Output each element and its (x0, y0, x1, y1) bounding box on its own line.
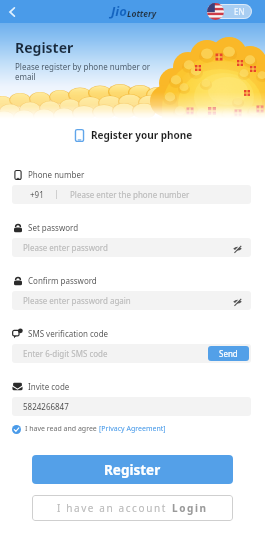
button[interactable]: I have read and agree (12, 424, 166, 434)
button[interactable]: Show password (231, 242, 243, 254)
staticText: +91 (30, 189, 44, 200)
staticText: Confirm password (28, 275, 97, 286)
staticText: [Privacy Agreement] (99, 424, 166, 434)
staticText: Send (219, 348, 238, 359)
staticText: Please enter the phone number (70, 189, 190, 200)
staticText: EN (234, 6, 245, 17)
button[interactable]: Back (2, 2, 22, 22)
staticText: I have an account (57, 501, 172, 515)
staticText: Set password (28, 222, 79, 233)
staticText: Jio (111, 2, 127, 20)
staticText: Register (15, 38, 74, 57)
staticText: Please enter password (23, 242, 108, 253)
staticText: Invite code (28, 381, 70, 392)
staticText: Please register by phone number or email (15, 61, 151, 83)
staticText: 5824266847 (23, 401, 69, 412)
staticText: Login (172, 501, 208, 515)
button[interactable]: Language English (207, 4, 252, 19)
staticText: Please enter password again (23, 295, 131, 306)
button[interactable]: Register (32, 455, 233, 484)
button[interactable]: Send (208, 346, 249, 361)
staticText: I have read and agree (25, 424, 99, 434)
staticText: Register your phone (91, 128, 193, 142)
staticText: Lottery (127, 8, 157, 20)
staticText: SMS verification code (28, 328, 109, 339)
staticText: Register (104, 461, 161, 479)
button[interactable]: I have an account (32, 495, 233, 521)
button[interactable]: Show password (231, 295, 243, 307)
staticText: Phone number (28, 169, 85, 180)
staticText: Enter 6-digit SMS code (23, 348, 108, 359)
